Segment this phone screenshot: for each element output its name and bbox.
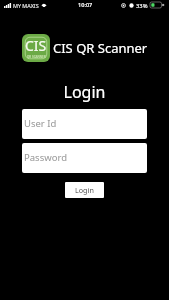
staticText: 33% [136,2,148,10]
staticText: Login [0,81,169,103]
staticText: CIS QR Scanner [53,39,148,57]
staticText: 10:07 [78,1,93,9]
staticText: QR SCANNER [27,55,46,59]
staticText: MY MAXIS [13,2,39,9]
staticText: Login [75,185,94,195]
staticText: Password [24,151,67,164]
staticText: User Id [24,117,57,130]
button[interactable]: Password [22,143,147,173]
staticText: CIS [25,36,47,55]
button[interactable]: User Id [22,109,147,139]
button[interactable]: Login [65,182,104,198]
